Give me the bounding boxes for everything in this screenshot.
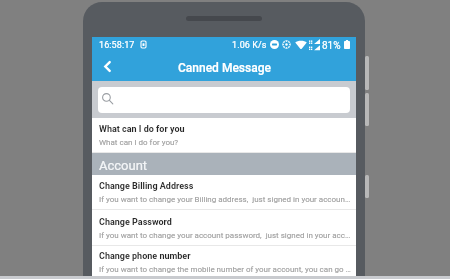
- button[interactable]: Search: [98, 87, 350, 113]
- staticText: Change Password: [99, 217, 172, 228]
- button[interactable]: Change Billing Address: [92, 175, 356, 210]
- staticText: If you want to change your account passw…: [99, 231, 351, 240]
- button[interactable]: Change phone number: [92, 246, 356, 279]
- staticText: If you want to change the mobile number …: [99, 265, 351, 274]
- staticText: What can I do for you: [99, 124, 185, 135]
- button[interactable]: Change Password: [92, 210, 356, 246]
- staticText: If you want to change your Billing addre…: [99, 195, 351, 204]
- staticText: Account: [99, 158, 148, 173]
- staticText: What can I do for you?: [99, 138, 179, 147]
- staticText: Change Billing Address: [99, 181, 194, 192]
- staticText: 81%: [322, 40, 341, 52]
- staticText: 1.06 K/s: [232, 40, 267, 51]
- staticText: 16:58:17: [99, 40, 135, 51]
- button[interactable]: What can I do for you: [92, 118, 356, 153]
- staticText: Canned Message: [178, 61, 271, 75]
- staticText: Change phone number: [99, 251, 191, 262]
- button[interactable]: Back: [92, 51, 122, 81]
